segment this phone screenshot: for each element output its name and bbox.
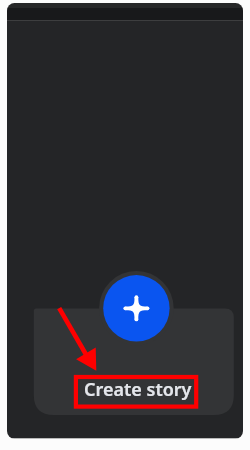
button[interactable]: Create story (103, 275, 169, 341)
staticText: Create story (84, 377, 192, 402)
button[interactable]: Create story (34, 308, 234, 415)
